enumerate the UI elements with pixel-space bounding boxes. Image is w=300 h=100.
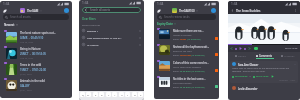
button[interactable]: Sara-Ann Glasser (232, 61, 296, 67)
button[interactable]: 00:19:13:00 (253, 75, 269, 78)
button[interactable]: Make sure there are no... (154, 27, 219, 43)
staticText: Today (180, 38, 187, 41)
button[interactable]: Leslie Alexander (232, 86, 300, 90)
staticText: Jul 28, 2022 (20, 73, 32, 76)
staticText: Aug 26, 2022 (20, 57, 34, 60)
staticText: Q (82, 93, 84, 96)
button[interactable]: Comment options (294, 63, 296, 65)
button[interactable]: Profile (64, 8, 69, 13)
staticText: No titles in the last scene... (173, 77, 206, 81)
button[interactable]: O (132, 92, 137, 97)
staticText: Search all assets (10, 15, 31, 19)
staticText: I (127, 93, 128, 96)
staticText: Expiry (173, 54, 180, 57)
button[interactable]: Being in Nature (0, 45, 72, 61)
button[interactable]: Clear filters (82, 17, 96, 20)
button[interactable]: Q (80, 92, 85, 97)
button[interactable]: R (99, 92, 104, 97)
staticText: (in progress) (191, 86, 205, 89)
button[interactable]: Profile (211, 8, 216, 13)
button[interactable]: The best nature spots out... (0, 29, 72, 45)
staticText: Trees in the wild (20, 63, 42, 67)
staticText: O (134, 93, 136, 96)
staticText: 1:34 (82, 1, 89, 5)
button[interactable]: Animals in the wild (0, 77, 72, 93)
staticText: Animals in the wild (20, 79, 45, 83)
staticText: TheGAM100 (179, 9, 195, 13)
button[interactable]: P (138, 92, 143, 97)
button[interactable]: T (106, 92, 111, 97)
button[interactable]: Menu (3, 9, 7, 13)
button[interactable]: Search all assets (3, 14, 69, 20)
button[interactable]: Play (239, 47, 242, 50)
staticText: 00:18:12:08 (285, 47, 298, 50)
staticText: P (140, 93, 142, 96)
staticText: I want over to search that all the backg… (232, 67, 296, 73)
button[interactable]: Next (248, 47, 251, 50)
button[interactable]: Activities (276, 52, 299, 60)
staticText: Expiry (173, 70, 180, 73)
button[interactable]: Previous (230, 47, 233, 50)
button[interactable]: U (119, 92, 124, 97)
staticText: Search review tasks (164, 15, 190, 19)
staticText: Colors of this scene need m... (173, 61, 209, 65)
button[interactable]: Trees in the wild (0, 61, 72, 77)
staticText: Make sure there are no... (173, 29, 204, 33)
staticText: In 45 days (180, 86, 191, 89)
staticText: The snow buddies (173, 82, 192, 85)
staticText: Activities (284, 54, 295, 57)
button[interactable]: Y (112, 92, 117, 97)
button[interactable]: E (93, 92, 98, 97)
button[interactable]: Menu (157, 9, 161, 13)
button[interactable]: Expiry Date (157, 22, 176, 26)
button[interactable]: Search review tasks (157, 14, 216, 20)
button[interactable]: Back (231, 9, 234, 12)
button[interactable]: Episode 1 (79, 27, 144, 34)
button[interactable]: Status (215, 53, 218, 56)
button[interactable]: Status (215, 69, 218, 72)
button[interactable]: Wild nature scenes LT fire in... (79, 34, 144, 41)
button[interactable]: Status (215, 37, 218, 40)
button[interactable]: Newest (4, 23, 18, 27)
staticText: In 09 days (180, 70, 191, 73)
staticText: Leslie Alexander (238, 87, 258, 90)
button[interactable]: I (125, 92, 130, 97)
staticText: W (87, 93, 90, 96)
staticText: Aug 28, 2022 (20, 41, 34, 44)
button[interactable]: Play range (271, 75, 274, 78)
staticText: Movies in the wild (173, 34, 192, 37)
staticText: 1:34 (3, 2, 10, 6)
staticText: Expiry (173, 38, 180, 41)
button[interactable]: 00:18:05:00 (232, 75, 248, 78)
button[interactable]: W (86, 92, 91, 97)
staticText: Recent searches (82, 23, 101, 26)
staticText: 00:18:05:00 (235, 75, 248, 78)
staticText: Newest (4, 23, 15, 27)
staticText: (in progress) (187, 38, 201, 41)
button[interactable]: Status (215, 85, 218, 88)
button[interactable]: More options (294, 9, 297, 12)
staticText: At Nature (87, 43, 139, 46)
button[interactable]: Back (82, 7, 141, 13)
staticText: Episode 1 (87, 29, 139, 32)
staticText: Sara-Ann Glasser (238, 63, 259, 66)
staticText: Wild nature scenes LT fire in... (87, 36, 139, 39)
button[interactable]: At Nature (79, 41, 144, 48)
staticText: 25MCT - 00:19:53:05 (20, 52, 46, 56)
staticText: GALLRY (20, 84, 30, 88)
button[interactable]: Mark range (254, 47, 258, 50)
button[interactable]: Comments (253, 52, 276, 60)
staticText: The Snow Buddies (236, 9, 261, 13)
staticText: U (121, 93, 123, 96)
button[interactable]: No titles in the last scene... (154, 75, 219, 91)
staticText: Y (114, 93, 116, 96)
button[interactable]: Details (229, 52, 253, 60)
staticText: to (249, 75, 252, 78)
button[interactable]: Review all the keyframes wit... (154, 43, 219, 59)
button[interactable]: Colors of this scene need m... (154, 59, 219, 75)
